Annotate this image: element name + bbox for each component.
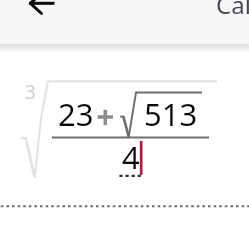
- staticText: 23: [58, 93, 94, 135]
- staticText: 3: [25, 79, 36, 105]
- staticText: 4: [122, 136, 140, 178]
- button[interactable]: Back: [18, 0, 66, 24]
- staticText: 513: [144, 93, 198, 135]
- staticText: Calculator: [216, 0, 249, 21]
